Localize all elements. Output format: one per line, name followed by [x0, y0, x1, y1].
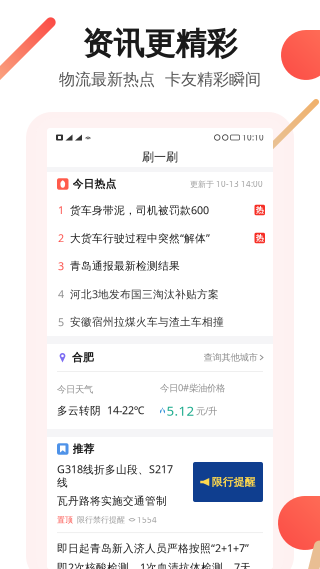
- staticText: 资讯更精彩: [82, 25, 237, 63]
- staticText: 1: [58, 203, 64, 217]
- staticText: 物流最新热点 卡友精彩瞬间: [59, 70, 261, 89]
- staticText: 青岛通报最新检测结果: [70, 259, 180, 272]
- staticText: 5: [58, 315, 64, 329]
- staticText: 3: [58, 259, 64, 273]
- staticText: 即2次核酸检测、1次血清抗体检测、7天: [57, 560, 251, 569]
- button[interactable]: 5: [47, 308, 273, 336]
- staticText: 合肥: [72, 351, 94, 364]
- staticText: 置顶: [57, 515, 73, 525]
- staticText: 刷一刷: [142, 150, 178, 164]
- staticText: G318线折多山段、S217线: [57, 462, 173, 489]
- staticText: 限行提醒: [212, 475, 256, 488]
- staticText: 安徽宿州拉煤火车与渣土车相撞: [70, 315, 224, 328]
- staticText: 今日0#柴油价格: [160, 381, 225, 394]
- staticText: 今日热点: [72, 177, 116, 190]
- staticText: 热: [256, 233, 264, 243]
- button[interactable]: 1: [47, 196, 273, 224]
- button[interactable]: 2: [47, 224, 273, 252]
- staticText: 热: [256, 205, 264, 215]
- staticText: 多云转阴 14-22℃: [57, 403, 145, 417]
- staticText: 2: [58, 231, 64, 245]
- staticText: 限行禁行提醒: [77, 515, 125, 525]
- staticText: 5.12: [166, 402, 194, 419]
- button[interactable]: G318线折多山段、S217线: [47, 461, 273, 525]
- staticText: 今日天气: [57, 384, 93, 395]
- staticText: 即日起青岛新入济人员严格按照“2+1+7”: [57, 541, 249, 555]
- staticText: 4: [58, 287, 64, 301]
- staticText: 10:10: [242, 132, 264, 143]
- button[interactable]: 4: [47, 280, 273, 308]
- staticText: 大货车行驶过程中突然“解体”: [70, 231, 210, 245]
- staticText: 查询其他城市: [203, 352, 257, 363]
- button[interactable]: 3: [47, 252, 273, 280]
- staticText: 元/升: [196, 404, 217, 417]
- staticText: 瓦丹路将实施交通管制: [57, 494, 167, 507]
- staticText: 1554: [137, 514, 157, 525]
- staticText: 货车身带泥，司机被罚款600: [70, 203, 209, 217]
- staticText: 推荐: [72, 442, 94, 455]
- button[interactable]: 查询其他城市: [203, 352, 263, 363]
- staticText: 更新于 10-13 14:00: [190, 179, 263, 189]
- button[interactable]: 即日起青岛新入济人员严格按照“2+1+7”: [47, 533, 273, 569]
- staticText: 河北3地发布国三淘汰补贴方案: [70, 287, 219, 301]
